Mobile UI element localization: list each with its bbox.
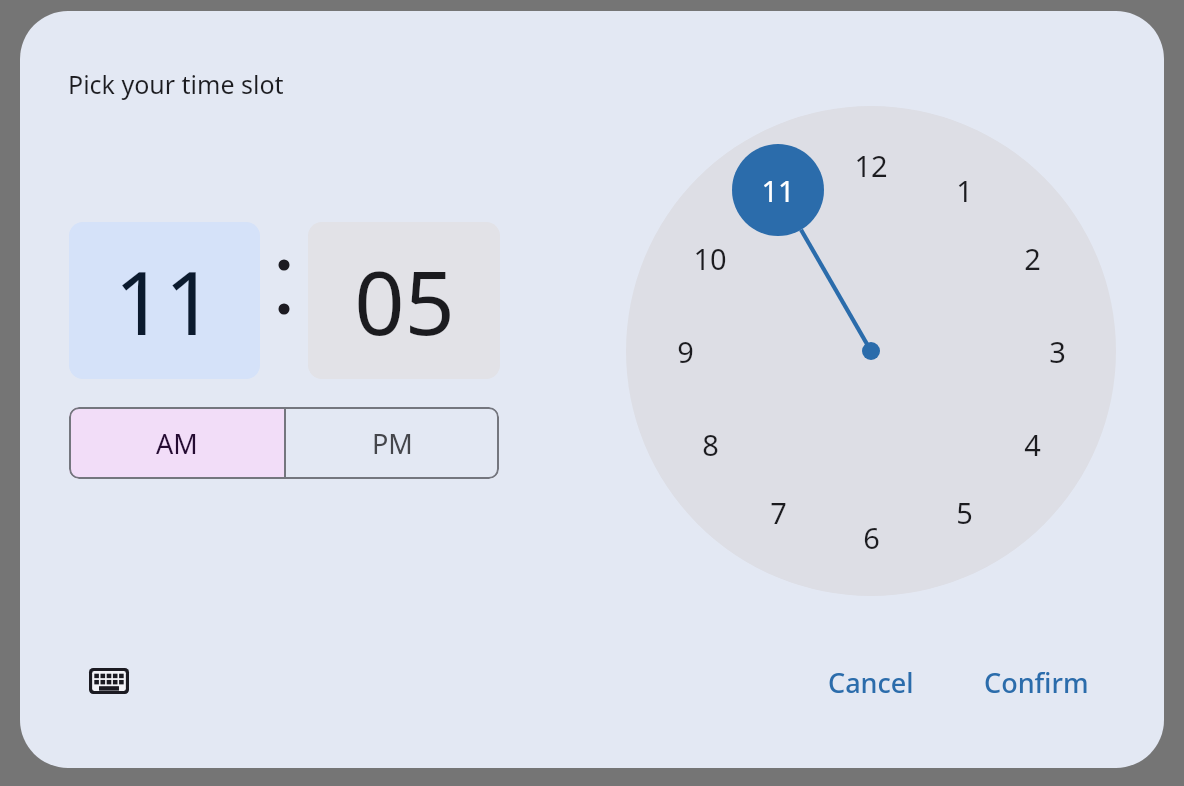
staticText: 6: [863, 518, 880, 557]
staticText: 05: [354, 241, 455, 361]
button[interactable]: Confirm: [970, 656, 1102, 708]
button[interactable]: 11: [69, 222, 260, 379]
button[interactable]: AM: [69, 407, 284, 479]
staticText: Confirm: [984, 664, 1089, 701]
staticText: 8: [702, 425, 719, 464]
staticText: 5: [956, 493, 973, 532]
staticText: Pick your time slot: [68, 67, 284, 101]
staticText: 12: [854, 146, 888, 185]
button[interactable]: 05: [308, 222, 500, 379]
staticText: 4: [1024, 425, 1041, 464]
staticText: 9: [677, 332, 694, 371]
staticText: 1: [956, 171, 973, 210]
staticText: 11: [114, 241, 215, 361]
staticText: PM: [372, 425, 413, 462]
staticText: 3: [1049, 332, 1066, 371]
staticText: 11: [761, 171, 795, 210]
staticText: 7: [770, 493, 787, 532]
staticText: 10: [693, 239, 727, 278]
button[interactable]: Switch to text input: [81, 659, 137, 703]
button[interactable]: Clock dial: [626, 106, 1116, 596]
staticText: AM: [156, 425, 198, 462]
staticText: 2: [1024, 239, 1041, 278]
staticText: Cancel: [828, 664, 914, 701]
button[interactable]: Cancel: [810, 656, 932, 708]
button[interactable]: PM: [286, 407, 499, 479]
